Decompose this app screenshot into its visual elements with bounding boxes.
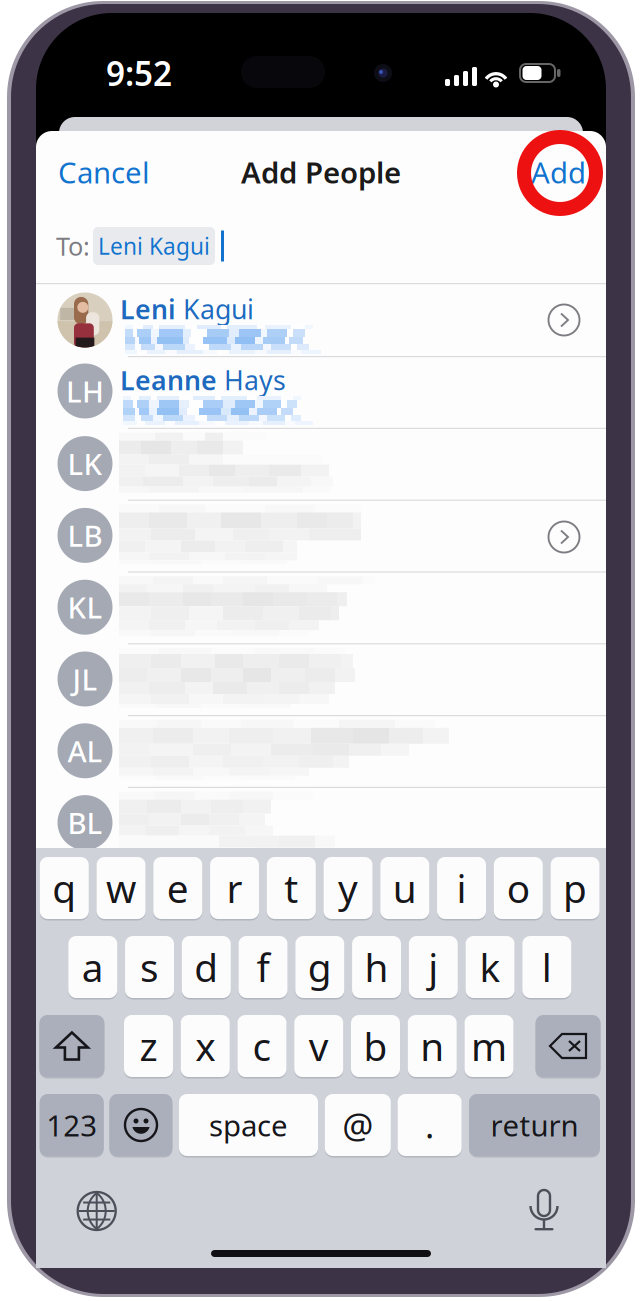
staticText: 123	[46, 1105, 97, 1144]
staticText: To:	[56, 229, 90, 263]
staticText: m	[471, 1020, 507, 1072]
button[interactable]: z	[124, 1015, 173, 1078]
button[interactable]	[535, 1015, 600, 1078]
button[interactable]: Next keyboard	[78, 1192, 116, 1230]
staticText: y	[338, 862, 358, 914]
button[interactable]: e	[153, 857, 202, 920]
staticText: KL	[67, 588, 102, 627]
button[interactable]: @	[325, 1094, 391, 1157]
button[interactable]: d	[182, 936, 231, 999]
staticText: u	[393, 862, 417, 914]
staticText: Leni Kagui	[98, 231, 210, 261]
button[interactable]: v	[294, 1015, 343, 1078]
staticText: p	[563, 862, 587, 914]
button[interactable]: n	[408, 1015, 457, 1078]
staticText: .	[425, 1102, 434, 1148]
staticText: LK	[67, 444, 102, 483]
staticText: k	[480, 941, 501, 993]
button[interactable]: Cancel	[58, 149, 178, 195]
button[interactable]: t	[267, 857, 316, 920]
staticText: return	[490, 1105, 578, 1144]
staticText: c	[252, 1020, 271, 1072]
staticText: z	[139, 1020, 157, 1072]
button[interactable]: Dictate	[530, 1190, 558, 1231]
staticText: space	[209, 1105, 288, 1144]
button[interactable]: w	[96, 857, 145, 920]
button[interactable]: g	[295, 936, 344, 999]
button[interactable]: l	[522, 936, 571, 999]
staticText: i	[457, 862, 467, 914]
staticText: Leni	[120, 291, 183, 327]
button[interactable]: space	[179, 1094, 318, 1157]
staticText: Hays	[224, 362, 286, 398]
staticText: b	[363, 1020, 387, 1072]
staticText: h	[365, 941, 389, 993]
staticText: w	[106, 862, 136, 914]
staticText: r	[227, 862, 243, 914]
button[interactable]: a	[68, 936, 117, 999]
staticText: j	[428, 941, 438, 993]
button[interactable]: i	[437, 857, 486, 920]
staticText: Kagui	[183, 291, 254, 327]
staticText: l	[542, 941, 552, 993]
staticText: JL	[72, 659, 97, 698]
staticText: LB	[67, 516, 102, 555]
button[interactable]: .	[398, 1094, 462, 1157]
staticText: @	[342, 1102, 373, 1148]
button[interactable]: x	[181, 1015, 230, 1078]
staticText: f	[257, 941, 270, 993]
button[interactable]: Add	[496, 149, 586, 195]
button[interactable]	[109, 1094, 172, 1157]
staticText: Add	[531, 152, 586, 191]
staticText: v	[309, 1020, 329, 1072]
button[interactable]: f	[239, 936, 288, 999]
staticText: s	[140, 941, 159, 993]
button[interactable]: h	[352, 936, 401, 999]
button[interactable]: s	[125, 936, 174, 999]
button[interactable]: y	[324, 857, 373, 920]
staticText: AL	[67, 731, 102, 770]
button[interactable]: Contact info	[548, 304, 579, 335]
staticText: q	[52, 862, 76, 914]
button[interactable]: j	[409, 936, 458, 999]
staticText: n	[420, 1020, 444, 1072]
button[interactable]: c	[237, 1015, 286, 1078]
staticText: t	[284, 862, 298, 914]
staticText: x	[195, 1020, 215, 1072]
staticText: 9:52	[106, 51, 172, 95]
button[interactable]: o	[494, 857, 543, 920]
staticText: LH	[66, 371, 104, 410]
staticText: d	[194, 941, 218, 993]
button[interactable]: q	[40, 857, 89, 920]
button[interactable]: u	[380, 857, 429, 920]
button[interactable]: r	[210, 857, 259, 920]
button[interactable]: k	[466, 936, 515, 999]
button[interactable]: return	[469, 1094, 600, 1157]
button[interactable]: m	[464, 1015, 513, 1078]
staticText: BL	[67, 803, 102, 842]
staticText: a	[82, 941, 104, 993]
staticText: o	[507, 862, 530, 914]
staticText: Leanne	[120, 362, 224, 398]
button[interactable]: Contact info	[548, 521, 579, 552]
button[interactable]: b	[351, 1015, 400, 1078]
button[interactable]: 123	[40, 1094, 104, 1157]
button[interactable]	[39, 1015, 104, 1078]
staticText: g	[308, 941, 332, 993]
staticText: e	[167, 862, 189, 914]
button[interactable]: p	[550, 857, 599, 920]
staticText: Cancel	[58, 152, 150, 191]
staticText: Add People	[241, 152, 401, 191]
